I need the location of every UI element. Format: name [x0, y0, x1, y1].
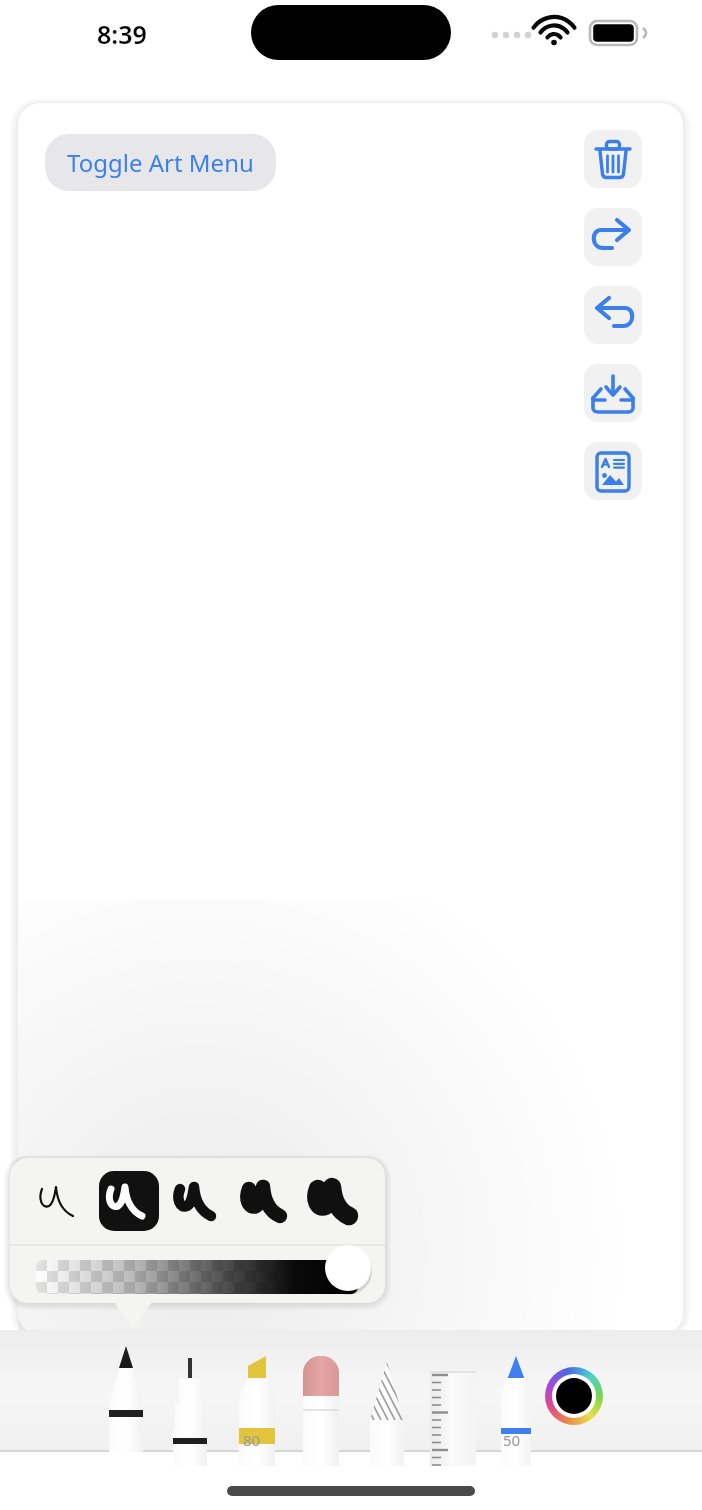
button[interactable]: Delete	[584, 130, 642, 188]
button[interactable]: Stroke size 3	[168, 1171, 228, 1231]
staticText: Toggle Art Menu	[67, 146, 254, 179]
button[interactable]: Marker	[486, 1344, 546, 1466]
button[interactable]: Stroke size 4	[237, 1171, 297, 1231]
button[interactable]: Stroke size 1	[30, 1171, 90, 1231]
button[interactable]: Eraser	[291, 1344, 351, 1466]
button[interactable]: Stroke size 5	[306, 1171, 366, 1231]
button[interactable]: Fineliner	[160, 1344, 220, 1466]
button[interactable]: Stroke size 2	[99, 1171, 159, 1231]
button[interactable]: Opacity	[322, 1251, 374, 1285]
button[interactable]: Toggle Art Menu	[45, 134, 276, 191]
staticText: 8:39	[97, 17, 147, 51]
staticText: 50	[503, 1430, 521, 1450]
button[interactable]: Undo	[584, 208, 642, 266]
button[interactable]: Ruler	[422, 1344, 482, 1466]
button[interactable]: Pen	[96, 1330, 156, 1452]
button[interactable]: Document	[584, 442, 642, 500]
button[interactable]: Color	[545, 1367, 603, 1425]
button[interactable]: Pencil	[357, 1344, 417, 1466]
button[interactable]: Save	[584, 364, 642, 422]
button[interactable]: Redo	[584, 286, 642, 344]
button[interactable]: Highlighter	[227, 1344, 287, 1466]
staticText: 80	[243, 1430, 261, 1450]
